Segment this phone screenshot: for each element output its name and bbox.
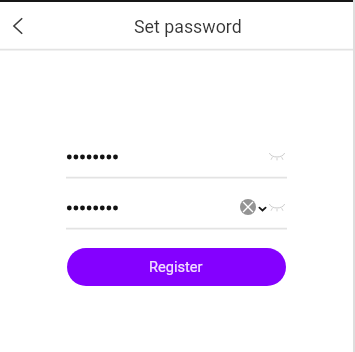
button[interactable]: Register bbox=[67, 248, 286, 286]
staticText: Set password bbox=[134, 16, 242, 37]
staticText: Register bbox=[149, 258, 203, 275]
button[interactable]: Clear text bbox=[240, 199, 256, 215]
button[interactable]: More bbox=[258, 205, 267, 214]
button[interactable]: Show password bbox=[269, 201, 285, 215]
button[interactable]: Show password bbox=[269, 150, 285, 164]
button[interactable]: Back bbox=[2, 10, 34, 42]
